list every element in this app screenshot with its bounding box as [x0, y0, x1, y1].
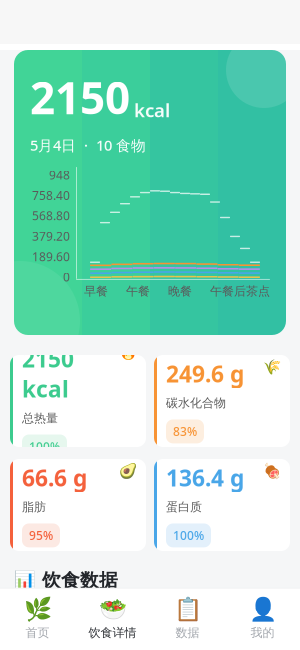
staticText: 🌿 [23, 596, 51, 622]
staticText: 🍖 [263, 463, 281, 479]
button[interactable]: 66.6 g [10, 459, 146, 551]
staticText: 👤 [248, 596, 276, 622]
staticText: 首页 [25, 625, 49, 640]
staticText: 碳水化合物 [166, 396, 226, 410]
staticText: 379.20 [32, 228, 70, 244]
staticText: kcal [134, 98, 170, 122]
button[interactable]: 2150 kcal [10, 355, 146, 447]
staticText: 100% [29, 438, 60, 454]
staticText: 饮食数据 [42, 569, 118, 592]
staticText: 📋 [173, 596, 201, 622]
staticText: 95% [29, 527, 53, 543]
staticText: 午餐 [126, 284, 150, 299]
staticText: 脂肪 [22, 500, 46, 514]
staticText: 午餐后茶点 [210, 284, 270, 299]
button[interactable]: 136.4 g [154, 459, 290, 551]
staticText: 数据 [175, 625, 199, 640]
staticText: 饮食详情 [88, 625, 136, 640]
staticText: 🥗 [98, 596, 126, 622]
staticText: 📊 [14, 571, 36, 590]
staticText: 🌾 [263, 359, 281, 375]
button[interactable]: 📋 [150, 594, 225, 642]
staticText: 136.4 g [166, 463, 244, 493]
staticText: 568.80 [32, 208, 70, 224]
button[interactable]: 249.6 g [154, 355, 290, 447]
staticText: 948 [49, 167, 70, 183]
staticText: 0 [63, 269, 70, 285]
staticText: 🔥 [119, 344, 137, 360]
staticText: 我的 [250, 625, 274, 640]
button[interactable]: 👤 [225, 594, 300, 642]
button[interactable]: 🥗 [75, 594, 150, 642]
staticText: 83% [173, 423, 197, 439]
button[interactable]: 🌿 [0, 594, 75, 642]
staticText: 早餐 [84, 284, 108, 299]
staticText: 189.60 [32, 249, 70, 264]
staticText: 🥑 [119, 463, 137, 479]
staticText: 100% [173, 527, 204, 543]
staticText: 2150 kcal [22, 344, 74, 404]
staticText: 66.6 g [22, 463, 87, 493]
staticText: 249.6 g [166, 359, 244, 389]
staticText: 蛋白质 [166, 500, 202, 514]
staticText: 总热量 [22, 411, 58, 425]
staticText: 758.40 [32, 187, 70, 203]
staticText: 5月4日 · 10 食物 [30, 135, 146, 155]
staticText: 2150 [30, 68, 130, 126]
staticText: 晚餐 [168, 284, 192, 299]
